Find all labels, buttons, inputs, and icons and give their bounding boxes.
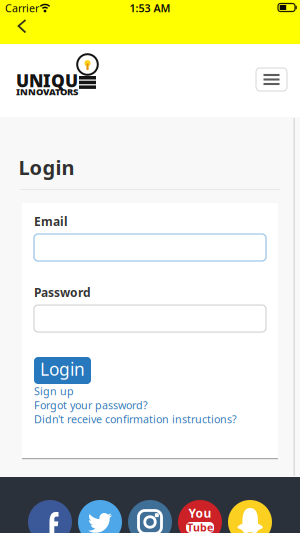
staticText: Login xyxy=(18,154,74,181)
staticText: Tube xyxy=(187,520,213,533)
button[interactable] xyxy=(228,500,272,533)
staticText: 1:53 AM xyxy=(129,1,170,15)
button[interactable]: Sign up xyxy=(34,384,74,398)
button[interactable]: You xyxy=(178,500,222,533)
button[interactable] xyxy=(28,500,72,533)
staticText: Didn't receive confirmation instructions… xyxy=(34,412,237,426)
staticText: UNIQU xyxy=(16,69,78,92)
button[interactable] xyxy=(78,500,122,533)
staticText: Carrier xyxy=(5,1,39,15)
staticText: Login xyxy=(40,357,85,380)
button[interactable]: Login xyxy=(34,357,91,384)
button[interactable]: Forgot your password? xyxy=(34,398,148,412)
button[interactable] xyxy=(256,68,287,91)
button[interactable] xyxy=(128,500,172,533)
staticText: Forgot your password? xyxy=(34,398,148,412)
staticText: You xyxy=(188,505,211,521)
staticText: INNOVATORS xyxy=(16,85,78,98)
staticText: Sign up xyxy=(34,384,74,398)
button[interactable] xyxy=(17,19,27,34)
staticText: Password xyxy=(34,284,91,300)
button[interactable]: UNIQU xyxy=(16,52,126,97)
staticText: Email xyxy=(34,213,68,229)
button[interactable]: Didn't receive confirmation instructions… xyxy=(34,412,237,426)
